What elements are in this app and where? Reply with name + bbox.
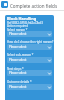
button[interactable]: Please select (7, 84, 52, 90)
staticText: Action required (7, 24, 28, 28)
button[interactable]: Complete action fields (10, 3, 58, 9)
staticText: Select sub-reason * (7, 53, 34, 57)
staticText: Complete action fields (10, 3, 58, 9)
button[interactable]: Please select (7, 70, 52, 76)
staticText: Please select (9, 32, 27, 36)
staticText: Please select (9, 58, 27, 62)
staticText: Select reason * (7, 28, 28, 32)
staticText: Please select (9, 45, 27, 49)
button[interactable]: App logo (1, 1, 8, 8)
staticText: How do I choose the right reason? (7, 40, 54, 44)
button[interactable]: Please select (7, 31, 52, 37)
staticText: Please select (9, 71, 27, 75)
button[interactable]: Please select (7, 57, 52, 63)
staticText: Block Handling (7, 16, 37, 21)
staticText: Please select (9, 85, 27, 89)
button[interactable]: Please select (7, 44, 52, 50)
staticText: Outcome details * (7, 80, 32, 84)
staticText: Ref 8382-GFSB-fnt2z-Dbd3 (7, 21, 43, 25)
staticText: Next steps * (7, 67, 24, 71)
